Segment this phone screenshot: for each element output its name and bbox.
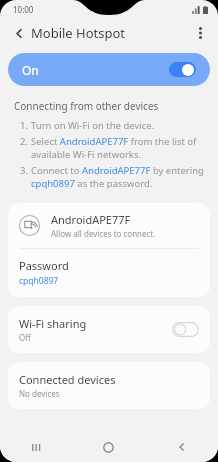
staticText: Connected devices [19,372,116,387]
staticText: Allow all devices to connect. [51,228,156,239]
button[interactable]: Password [8,249,210,297]
button[interactable]: Connected devices [8,362,210,409]
staticText: Password [19,258,69,273]
staticText: AndroidAPE77F [51,212,131,227]
button[interactable]: Home [72,432,145,462]
button[interactable]: Back [6,20,32,46]
staticText: 3. [20,164,31,177]
staticText: Mobile Hotspot [31,24,126,42]
staticText: Connect to AndroidAPE77F by entering cpq… [31,164,204,190]
staticText: Wi-Fi sharing [19,316,87,331]
staticText: Turn on Wi-Fi on the device. [31,119,155,132]
staticText: Select AndroidAPE77F from the list of av… [31,135,204,161]
button[interactable]: More options [187,20,213,46]
staticText: cpqh0897 [19,275,59,287]
staticText: Connecting from other devices [14,99,159,113]
staticText: No devices [19,388,60,399]
staticText: 10:00 [13,4,34,15]
staticText: On [22,62,39,78]
button[interactable]: AndroidAPE77F [8,203,210,248]
button[interactable]: Back [145,432,218,462]
staticText: 1. [20,119,31,132]
button[interactable]: Wi-Fi sharing [8,306,210,353]
staticText: Off [19,332,31,343]
button[interactable]: On [8,53,210,86]
button[interactable]: Recent apps [0,432,72,462]
staticText: 2. [20,135,31,148]
